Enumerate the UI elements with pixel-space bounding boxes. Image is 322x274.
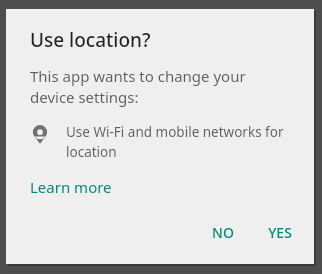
button[interactable]: YES (258, 217, 302, 248)
other: Location (30, 124, 50, 144)
staticText: NO (212, 223, 234, 242)
staticText: This app wants to change your device set… (30, 66, 292, 108)
staticText: Use location? (30, 27, 151, 53)
button[interactable]: NO (202, 217, 244, 248)
staticText: Learn more (30, 177, 112, 197)
button[interactable]: Learn more (30, 175, 112, 199)
staticText: Use Wi-Fi and mobile networks for locati… (66, 123, 292, 161)
staticText: YES (268, 223, 292, 242)
